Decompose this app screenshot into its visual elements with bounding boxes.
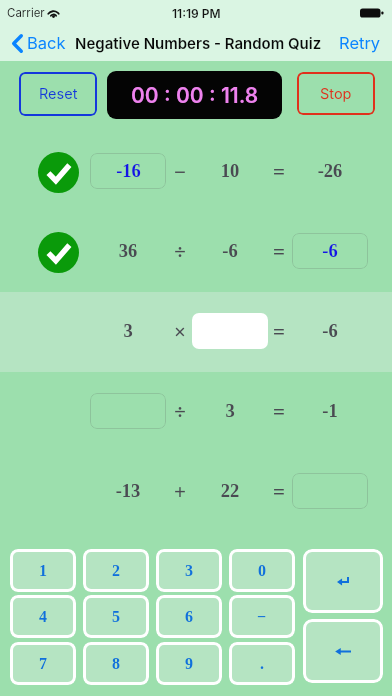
button[interactable]: -13 [0,452,392,532]
staticText: 6 [185,608,193,626]
staticText: -16 [116,161,141,181]
button[interactable]: 7 [10,642,76,685]
button[interactable] [192,313,268,349]
button[interactable]: Reset [19,72,97,116]
staticText: = [259,320,299,343]
button[interactable]: Backspace [303,619,383,683]
staticText: 0 [258,562,266,580]
staticText: 10 [200,161,260,181]
staticText: 36 [98,241,158,261]
button[interactable]: 8 [83,642,149,685]
staticText: 5 [112,608,120,626]
staticText: 3 [200,401,260,421]
staticText: 22 [200,481,260,501]
staticText: -1 [300,401,360,421]
staticText: Negative Numbers - Random Quiz [75,34,322,52]
button[interactable]: . [229,642,295,685]
staticText: -26 [300,161,360,181]
staticText: − [257,608,267,626]
staticText: Back [27,33,66,53]
staticText: ÷ [160,400,200,423]
button[interactable]: Back [0,33,74,53]
staticText: 3 [98,321,158,341]
staticText: Reset [39,85,78,103]
button[interactable]: 2 [83,549,149,592]
button[interactable]: Enter [303,549,383,613]
button[interactable]: Stop [297,72,375,115]
staticText: -6 [322,241,338,261]
staticText: 9 [185,655,193,673]
button[interactable]: − [229,595,295,638]
staticText: + [160,480,200,503]
staticText: . [260,655,264,673]
staticText: 2 [112,562,120,580]
button[interactable]: 9 [156,642,222,685]
button[interactable]: -16 [0,132,392,212]
button[interactable]: 1 [10,549,76,592]
staticText: -13 [98,481,158,501]
staticText: = [259,240,299,263]
staticText: 7 [39,655,47,673]
button[interactable]: 3 [156,549,222,592]
button[interactable]: 4 [10,595,76,638]
button[interactable]: ÷ [0,372,392,452]
staticText: = [259,480,299,503]
staticText: = [259,160,299,183]
button[interactable] [292,473,368,509]
staticText: = [259,400,299,423]
button[interactable]: 5 [83,595,149,638]
staticText: -6 [300,321,360,341]
button[interactable]: -16 [90,153,166,189]
button[interactable]: 0 [229,549,295,592]
button[interactable]: -6 [292,233,368,269]
staticText: 00 : 00 : 11.8 [131,83,259,108]
staticText: 3 [185,562,193,580]
staticText: ÷ [160,240,200,263]
button[interactable]: 36 [0,212,392,292]
staticText: Stop [320,85,352,103]
staticText: − [160,160,200,183]
staticText: -6 [200,241,260,261]
button[interactable] [90,393,166,429]
staticText: Carrier [7,6,45,20]
staticText: × [160,320,200,343]
staticText: 8 [112,655,120,673]
staticText: 4 [39,608,47,626]
button[interactable]: Retry [328,27,392,59]
button[interactable]: 3 [0,292,392,372]
button[interactable]: 6 [156,595,222,638]
staticText: 11:19 PM [172,6,221,21]
staticText: 1 [39,562,47,580]
